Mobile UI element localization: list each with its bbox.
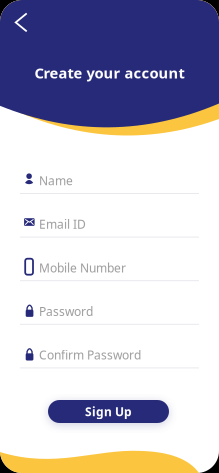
staticText: Create your account: [34, 63, 184, 82]
staticText: Sign Up: [85, 403, 132, 419]
button[interactable]: Mobile Number: [20, 257, 199, 281]
button[interactable]: Password: [20, 301, 199, 325]
staticText: Password: [39, 303, 93, 319]
staticText: Mobile Number: [39, 260, 126, 276]
button[interactable]: Name: [20, 170, 199, 194]
staticText: Name: [39, 173, 73, 188]
button[interactable]: Confirm Password: [20, 344, 199, 368]
button[interactable]: Sign Up: [48, 400, 169, 423]
staticText: Email ID: [39, 216, 86, 232]
button[interactable]: Email ID: [20, 214, 199, 238]
button[interactable]: Back: [7, 4, 36, 40]
staticText: Confirm Password: [39, 347, 141, 363]
